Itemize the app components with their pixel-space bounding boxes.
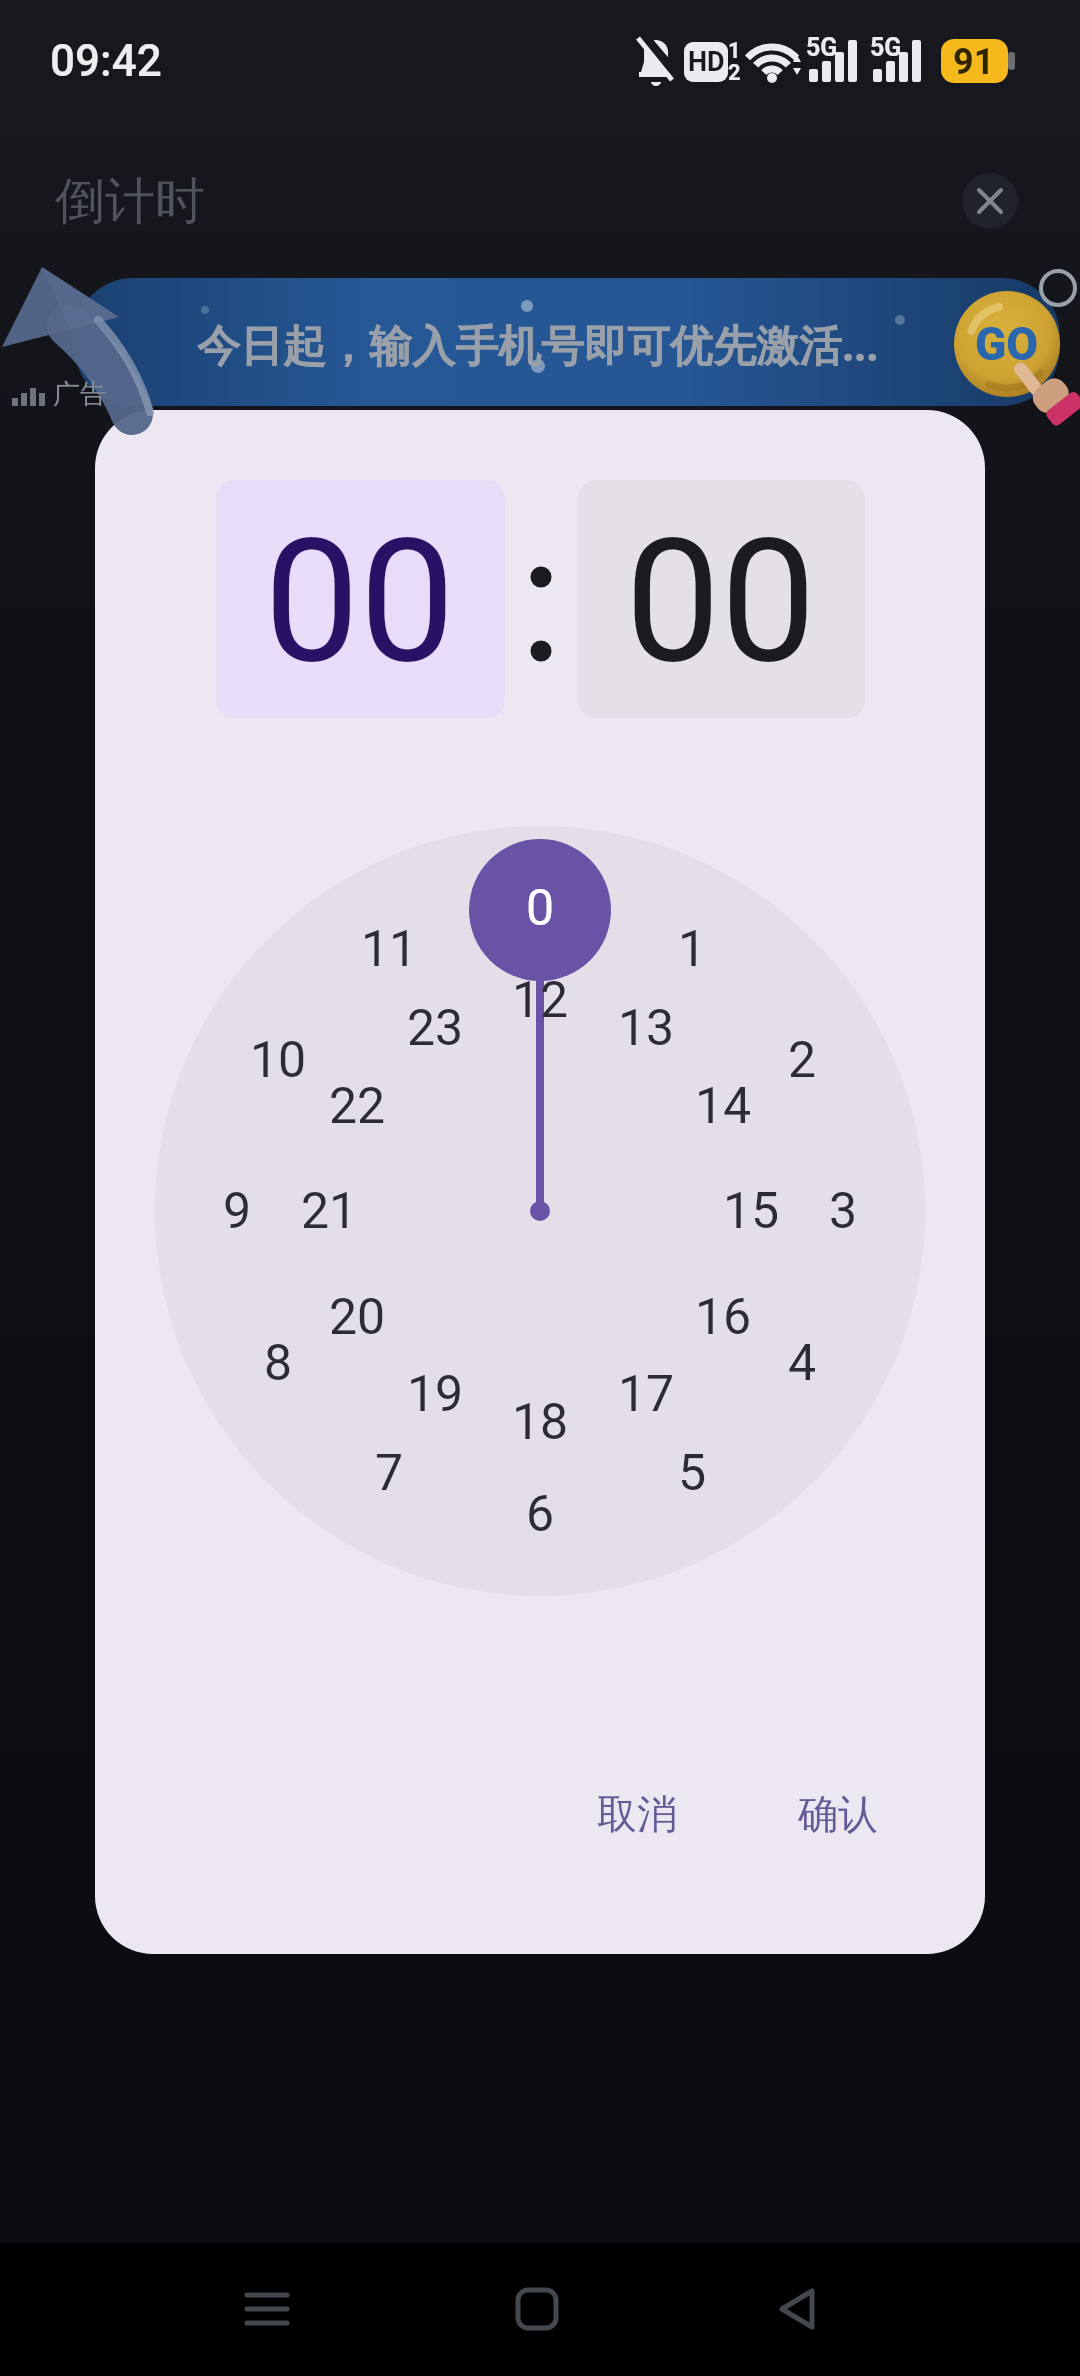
staticText: 14 [695, 1077, 752, 1136]
staticText: 4 [788, 1334, 817, 1393]
staticText: 23 [407, 999, 464, 1058]
button[interactable]: 取消 [552, 1769, 722, 1859]
button[interactable] [216, 480, 505, 718]
staticText: 5G [870, 33, 902, 62]
staticText: 09:42 [50, 35, 162, 87]
staticText: 取消 [597, 1789, 677, 1839]
staticText: 20 [329, 1288, 386, 1347]
staticText: 2 [728, 60, 741, 86]
staticText: 1 [678, 920, 707, 979]
staticText: 18 [512, 1393, 569, 1452]
button[interactable] [75, 278, 1060, 406]
staticText: 91 [953, 41, 995, 81]
staticText: 确认 [798, 1789, 878, 1839]
staticText: 广告 [53, 377, 107, 411]
staticText: 6 [526, 1485, 555, 1544]
staticText: 00 [625, 502, 817, 701]
staticText: 13 [618, 999, 675, 1058]
staticText: 19 [407, 1365, 464, 1424]
staticText: 1 [728, 38, 741, 64]
staticText: 11 [361, 920, 418, 979]
staticText: 2 [788, 1031, 817, 1090]
staticText: 22 [329, 1077, 386, 1136]
staticText: HD [688, 46, 725, 78]
staticText: 10 [250, 1031, 307, 1090]
staticText: 00 [264, 502, 456, 701]
staticText: 5 [678, 1444, 707, 1503]
button[interactable]: GO [954, 291, 1060, 397]
staticText: 21 [301, 1182, 358, 1241]
button[interactable] [487, 2259, 587, 2359]
staticText: 15 [723, 1182, 780, 1241]
staticText: 16 [695, 1288, 752, 1347]
staticText: 今日起，输入手机号即可优先激活... [197, 315, 879, 374]
staticText: 0 [526, 879, 555, 938]
staticText: 5G [806, 33, 838, 62]
staticText: 3 [829, 1182, 858, 1241]
button[interactable] [1037, 267, 1079, 309]
button[interactable] [217, 2259, 317, 2359]
staticText: GO [975, 317, 1039, 371]
button[interactable]: 确认 [753, 1769, 923, 1859]
button[interactable] [747, 2259, 847, 2359]
staticText: 17 [618, 1365, 675, 1424]
button[interactable] [958, 169, 1022, 233]
staticText: 8 [264, 1334, 293, 1393]
button[interactable] [578, 480, 865, 718]
staticText: 9 [223, 1182, 252, 1241]
staticText: 7 [375, 1444, 404, 1503]
staticText: 12 [512, 971, 569, 1030]
staticText: 倒计时 [55, 170, 205, 233]
